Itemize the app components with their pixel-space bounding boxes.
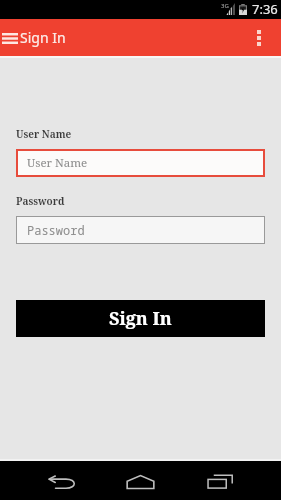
button[interactable]: Password — [16, 216, 265, 244]
button[interactable]: Recent apps — [196, 461, 243, 500]
staticText: User Name — [27, 155, 88, 171]
staticText: 3G — [221, 2, 229, 10]
button[interactable]: More options — [250, 23, 268, 53]
button[interactable]: Back — [39, 461, 86, 500]
button[interactable]: Open navigation menu — [0, 26, 19, 50]
button[interactable]: User Name — [16, 149, 265, 177]
button[interactable]: Sign In — [16, 300, 265, 337]
staticText: Sign In — [109, 306, 172, 331]
staticText: 7:36 — [252, 0, 278, 18]
staticText: Sign In — [20, 28, 66, 47]
staticText: Password — [27, 222, 85, 238]
button[interactable]: Home — [117, 461, 164, 500]
staticText: User Name — [16, 127, 72, 141]
staticText: Password — [16, 194, 65, 208]
